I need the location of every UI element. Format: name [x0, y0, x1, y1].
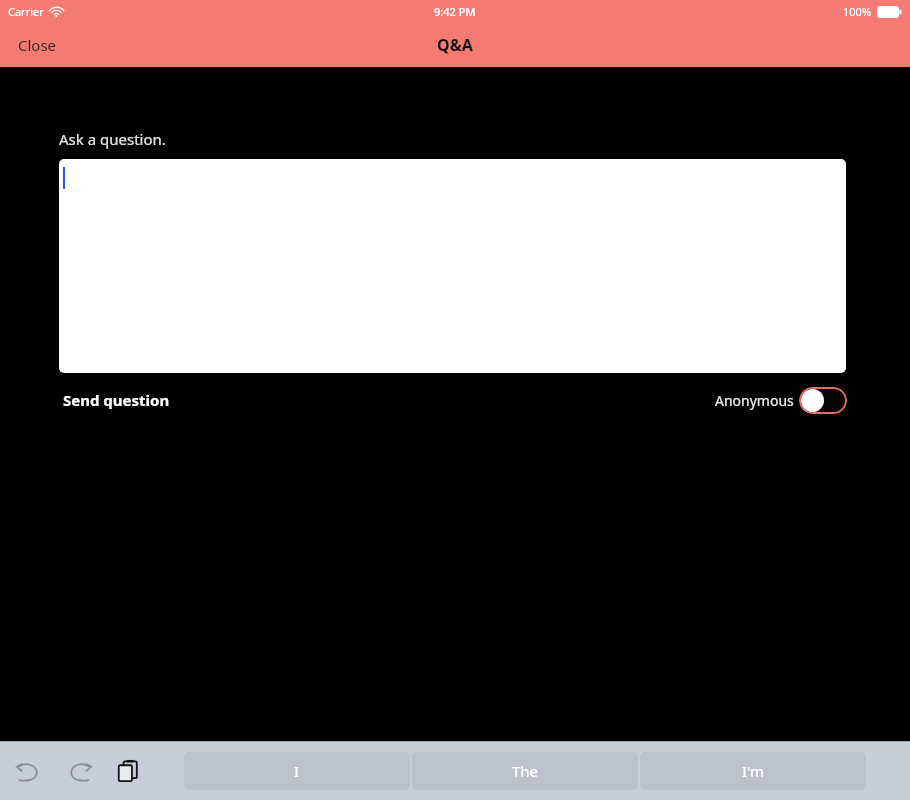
button[interactable]: Send question — [55, 385, 178, 415]
button[interactable]: The — [412, 752, 638, 790]
staticText: Carrier — [8, 4, 44, 19]
staticText: Send question — [63, 390, 170, 410]
button[interactable]: Close — [0, 25, 75, 65]
staticText: Q&A — [437, 34, 473, 56]
button[interactable]: Undo — [0, 742, 56, 800]
button[interactable] — [59, 159, 846, 373]
button[interactable]: Paste — [104, 742, 152, 800]
staticText: 100% — [843, 4, 872, 19]
staticText: Close — [18, 35, 57, 55]
button[interactable]: I — [184, 752, 410, 790]
button[interactable]: I'm — [640, 752, 866, 790]
button[interactable]: Anonymous — [715, 387, 847, 414]
staticText: I — [294, 761, 300, 781]
staticText: Ask a question. — [59, 129, 166, 149]
button[interactable]: Redo — [56, 742, 104, 800]
staticText: I'm — [742, 761, 765, 781]
staticText: Anonymous — [715, 391, 794, 410]
staticText: 9:42 PM — [434, 4, 476, 19]
staticText: The — [512, 761, 539, 781]
button[interactable] — [799, 387, 847, 414]
